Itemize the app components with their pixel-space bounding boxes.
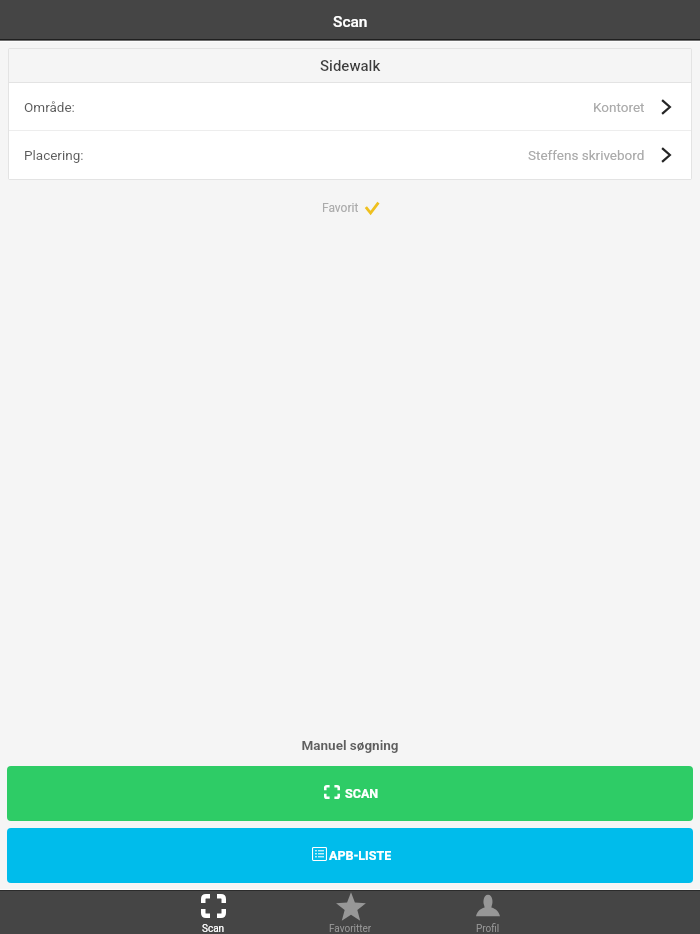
staticText: Kontoret [593,99,645,115]
button[interactable]: Profile [419,891,556,934]
staticText: Steffens skrivebord [528,147,645,163]
staticText: Placering: [24,147,84,163]
button[interactable]: APB list [7,828,693,883]
staticText: Scan [202,923,225,934]
staticText: SCAN [345,786,379,801]
staticText: Område: [24,99,75,115]
other: Favorites [337,894,365,922]
button[interactable]: Scan [145,891,282,934]
staticText: Profil [476,923,500,934]
staticText: Favorit [322,201,359,215]
staticText: Favoritter [329,923,372,934]
button[interactable]: Favorites [282,891,419,934]
staticText: Manuel søgning [0,737,700,753]
staticText: Scan [333,13,368,31]
other: Scan [201,894,226,918]
other: Profile [476,894,500,917]
other: APB list [312,847,327,861]
button[interactable]: Favorit [0,201,700,215]
button[interactable]: Område: [9,83,691,130]
staticText: Sidewalk [320,57,381,75]
button[interactable]: Scan [7,766,693,821]
staticText: APB-LISTE [329,848,392,863]
button[interactable]: Placering: [9,131,691,179]
other: Scan [324,785,340,799]
